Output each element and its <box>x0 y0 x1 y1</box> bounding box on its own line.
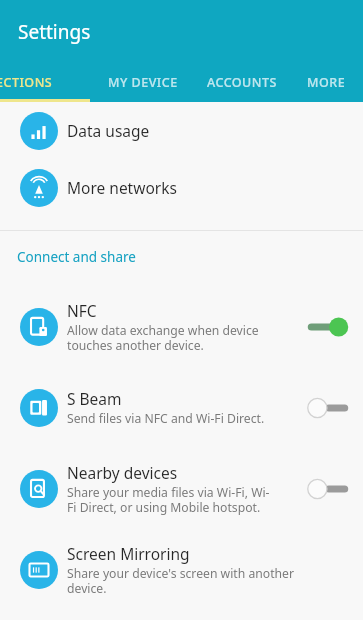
staticText: More networks <box>67 177 177 198</box>
staticText: Share your media files via Wi-Fi, Wi- Fi… <box>67 484 270 515</box>
staticText: S Beam <box>67 388 122 409</box>
staticText: Share your device's screen with another … <box>67 565 294 596</box>
button[interactable]: NFC <box>0 286 363 367</box>
staticText: ECTIONS <box>0 74 53 91</box>
staticText: Screen Mirroring <box>67 543 190 564</box>
button[interactable]: Data usage <box>0 102 363 159</box>
button[interactable]: S Beam <box>0 367 363 448</box>
button[interactable]: Toggle Nearby devices <box>305 474 351 504</box>
button[interactable]: MORE <box>290 66 363 98</box>
staticText: Connect and share <box>17 248 136 266</box>
staticText: Send files via NFC and Wi-Fi Direct. <box>67 410 265 427</box>
button[interactable]: Toggle NFC <box>305 312 351 342</box>
button[interactable]: More networks <box>0 159 363 216</box>
staticText: Data usage <box>67 120 150 141</box>
button[interactable]: Screen Mirroring <box>0 529 363 610</box>
staticText: Settings <box>18 19 91 45</box>
button[interactable]: MY DEVICE <box>92 66 194 98</box>
button[interactable]: ECTIONS <box>0 66 92 98</box>
staticText: Nearby devices <box>67 462 178 483</box>
button[interactable]: Toggle S Beam <box>305 393 351 423</box>
staticText: Allow data exchange when device touches … <box>67 322 259 353</box>
staticText: MY DEVICE <box>108 74 178 91</box>
staticText: MORE <box>307 74 346 91</box>
button[interactable]: ACCOUNTS <box>194 66 290 98</box>
staticText: ACCOUNTS <box>207 74 277 91</box>
button[interactable]: Nearby devices <box>0 448 363 529</box>
staticText: NFC <box>67 300 97 321</box>
